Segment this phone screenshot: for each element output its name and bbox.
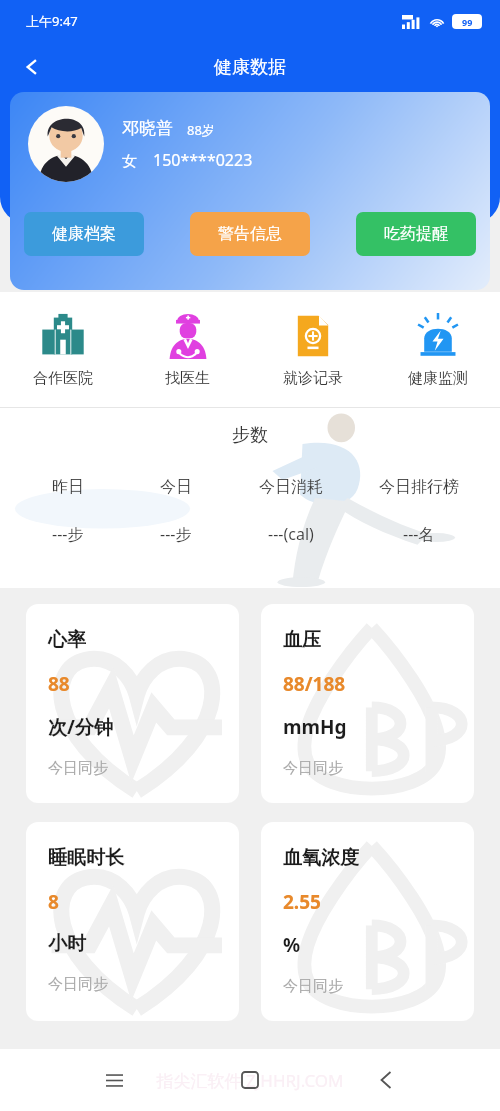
button[interactable]: 昨日 — [14, 477, 122, 545]
staticText: 次/分钟 — [48, 714, 113, 740]
button[interactable]: 合作医院 — [0, 292, 125, 407]
staticText: 就诊记录 — [283, 369, 343, 388]
staticText: 小时 — [48, 932, 86, 956]
button[interactable]: Back — [10, 45, 54, 89]
staticText: 健康档案 — [52, 224, 116, 244]
button[interactable]: 睡眠时长 — [26, 822, 239, 1021]
staticText: 健康数据 — [214, 56, 286, 79]
button[interactable]: 血氧浓度 — [261, 822, 474, 1021]
staticText: 女 — [122, 152, 137, 171]
staticText: 今日同步 — [48, 975, 108, 994]
staticText: 88 — [48, 671, 70, 697]
staticText: 吃药提醒 — [384, 224, 448, 244]
staticText: 88岁 — [187, 121, 215, 139]
staticText: 150****0223 — [153, 149, 253, 171]
staticText: ---(cal) — [268, 523, 314, 545]
staticText: 心率 — [48, 628, 86, 652]
staticText: 警告信息 — [218, 224, 282, 244]
staticText: 今日同步 — [48, 759, 108, 778]
staticText: 上午9:47 — [26, 12, 78, 30]
staticText: ---步 — [160, 523, 192, 545]
staticText: 8 — [48, 889, 59, 915]
button[interactable]: 心率 — [26, 604, 239, 803]
staticText: % — [283, 932, 301, 958]
button[interactable]: 找医生 — [125, 292, 250, 407]
staticText: mmHg — [283, 714, 347, 740]
staticText: 今日消耗 — [259, 477, 323, 497]
staticText: 99 — [462, 16, 473, 28]
staticText: 步数 — [0, 424, 500, 447]
staticText: 睡眠时长 — [48, 846, 124, 870]
button[interactable]: 吃药提醒 — [356, 212, 476, 256]
staticText: 今日同步 — [283, 977, 343, 996]
button[interactable]: Recent apps — [92, 1058, 136, 1102]
staticText: 今日排行榜 — [379, 477, 459, 497]
staticText: 昨日 — [52, 477, 84, 497]
staticText: 邓晓普 — [122, 118, 173, 139]
button[interactable]: 邓晓普 — [10, 92, 490, 290]
staticText: 血压 — [283, 628, 321, 652]
button[interactable]: Home — [228, 1058, 272, 1102]
button[interactable]: Back — [364, 1058, 408, 1102]
staticText: 今日 — [160, 477, 192, 497]
button[interactable]: 今日 — [122, 477, 229, 545]
button[interactable]: 健康监测 — [375, 292, 500, 407]
staticText: 找医生 — [165, 369, 210, 388]
button[interactable]: 健康档案 — [24, 212, 144, 256]
button[interactable]: 血压 — [261, 604, 474, 803]
button[interactable]: 今日消耗 — [229, 477, 352, 545]
button[interactable]: 警告信息 — [190, 212, 310, 256]
staticText: 血氧浓度 — [283, 846, 359, 870]
staticText: 指尖汇软件 ZJHHRJ.COM — [0, 1069, 500, 1092]
staticText: 合作医院 — [33, 369, 93, 388]
staticText: ---步 — [52, 523, 84, 545]
staticText: 88/188 — [283, 671, 346, 697]
staticText: 今日同步 — [283, 759, 343, 778]
staticText: 健康监测 — [408, 369, 468, 388]
staticText: 2.55 — [283, 889, 321, 915]
staticText: ---名 — [403, 523, 435, 545]
button[interactable]: 就诊记录 — [250, 292, 375, 407]
button[interactable]: 今日排行榜 — [352, 477, 486, 545]
